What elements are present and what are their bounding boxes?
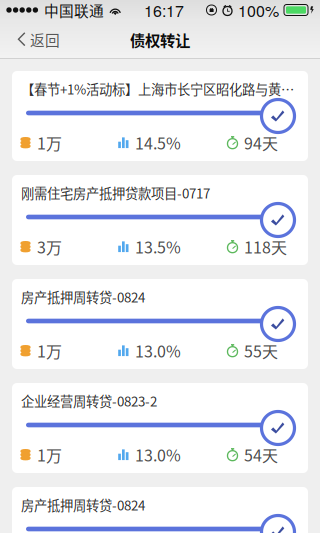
staticText: 房产抵押周转贷-0824 (21, 495, 145, 514)
button[interactable]: 企业经营周转贷-0823-2 (12, 383, 308, 473)
staticText: 债权转让 (130, 28, 190, 51)
staticText: 1万 (37, 131, 62, 154)
button[interactable]: 房产抵押周转贷-0824 (12, 487, 308, 533)
staticText: 房产抵押周转贷-0824 (21, 287, 145, 306)
staticText: 3万 (37, 235, 62, 258)
staticText: 1万 (37, 443, 62, 466)
staticText: 13.0% (135, 339, 181, 362)
button[interactable]: 【春节+1%活动标】上海市长宁区昭化路与黄… (12, 71, 308, 161)
staticText: 【春节+1%活动标】上海市长宁区昭化路与黄… (21, 79, 294, 98)
staticText: 企业经营周转贷-0823-2 (21, 391, 157, 410)
staticText: 13.0% (135, 443, 181, 466)
staticText: 返回 (30, 29, 60, 50)
staticText: 16:17 (144, 0, 184, 21)
staticText: 14.5% (135, 131, 181, 154)
staticText: 1万 (37, 339, 62, 362)
staticText: 55天 (244, 339, 278, 362)
button[interactable]: 房产抵押周转贷-0824 (12, 279, 308, 369)
staticText: 54天 (244, 443, 278, 466)
staticText: 中国联通 (44, 0, 104, 21)
staticText: 118天 (244, 235, 287, 258)
button[interactable]: 返回 (0, 19, 68, 59)
staticText: 100% (238, 0, 279, 21)
staticText: 94天 (244, 131, 278, 154)
button[interactable]: 刚需住宅房产抵押贷款项目-0717 (12, 175, 308, 265)
staticText: 13.5% (135, 235, 181, 258)
staticText: 刚需住宅房产抵押贷款项目-0717 (21, 183, 210, 202)
